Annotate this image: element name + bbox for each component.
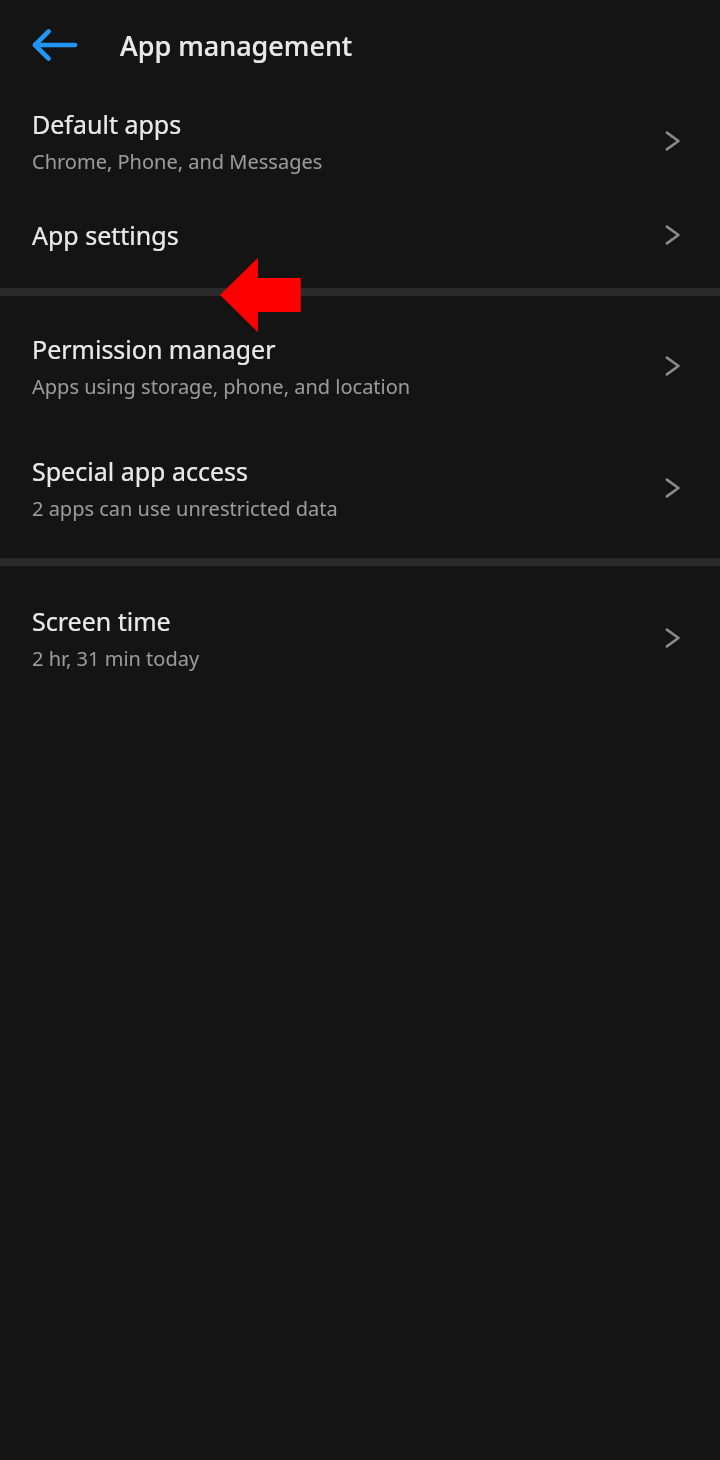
staticText: Special app access <box>32 454 248 488</box>
staticText: Permission manager <box>32 332 276 366</box>
staticText: Chrome, Phone, and Messages <box>32 148 323 175</box>
staticText: App settings <box>32 218 179 252</box>
staticText: Screen time <box>32 604 171 638</box>
staticText: 2 hr, 31 min today <box>32 645 200 672</box>
staticText: Default apps <box>32 107 182 141</box>
staticText: App management <box>120 27 353 64</box>
staticText: 2 apps can use unrestricted data <box>32 495 338 522</box>
button[interactable]: Permission manager <box>0 316 720 416</box>
button[interactable]: Default apps <box>0 91 720 191</box>
button[interactable]: App settings <box>0 191 720 279</box>
button[interactable]: Special app access <box>0 438 720 538</box>
button[interactable]: Screen time <box>0 588 720 688</box>
button[interactable]: Back <box>26 16 84 74</box>
staticText: Apps using storage, phone, and location <box>32 373 411 400</box>
